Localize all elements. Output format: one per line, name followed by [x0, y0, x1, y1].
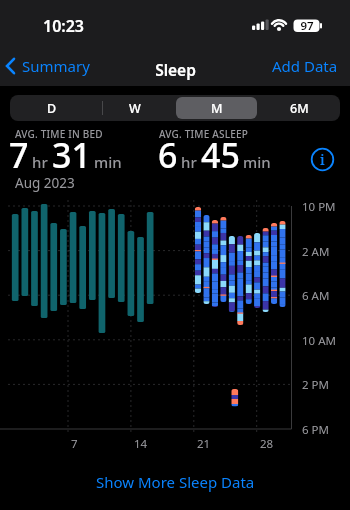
staticText: hr: [181, 152, 197, 172]
button[interactable]: Add Data: [253, 53, 338, 79]
staticText: 10 PM: [302, 199, 336, 215]
staticText: 10:23: [43, 15, 85, 37]
staticText: W: [129, 100, 141, 117]
staticText: Summary: [22, 56, 90, 76]
staticText: 10 AM: [302, 333, 336, 349]
button[interactable]: Show More Sleep Data: [75, 468, 275, 496]
staticText: Sleep: [155, 59, 196, 80]
staticText: 6M: [290, 100, 309, 117]
button[interactable]: W: [93, 95, 176, 121]
button[interactable]: M: [175, 95, 258, 121]
staticText: 28: [260, 436, 274, 452]
staticText: AVG. TIME IN BED: [15, 127, 103, 141]
staticText: 97: [300, 18, 314, 34]
button[interactable]: 6M: [258, 95, 340, 121]
staticText: i: [320, 150, 325, 169]
staticText: 14: [134, 436, 148, 452]
staticText: Add Data: [272, 56, 338, 76]
staticText: AVG. TIME ASLEEP: [159, 127, 249, 141]
button[interactable]: Summary: [2, 53, 90, 79]
staticText: Aug 2023: [15, 174, 75, 192]
staticText: Show More Sleep Data: [96, 472, 255, 492]
staticText: 45: [201, 132, 240, 178]
staticText: M: [211, 100, 223, 117]
staticText: hr: [32, 152, 48, 172]
staticText: 2 AM: [302, 244, 330, 260]
staticText: 2 PM: [302, 377, 329, 393]
button[interactable]: i: [309, 146, 336, 173]
staticText: 6 AM: [302, 288, 330, 304]
staticText: min: [243, 152, 271, 172]
staticText: 21: [197, 436, 211, 452]
staticText: 6: [158, 132, 178, 178]
staticText: 7: [71, 436, 78, 452]
staticText: D: [47, 100, 57, 117]
staticText: 31: [52, 132, 91, 178]
staticText: 7: [9, 132, 29, 178]
staticText: min: [94, 152, 122, 172]
button[interactable]: D: [10, 95, 93, 121]
staticText: 6 PM: [302, 422, 329, 438]
